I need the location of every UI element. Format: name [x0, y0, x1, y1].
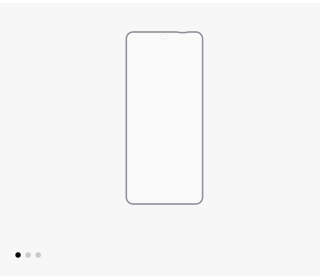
button[interactable]: Page 3	[35, 252, 41, 258]
button[interactable]: Page 1	[15, 252, 21, 258]
button[interactable]: iPhone	[126, 32, 202, 204]
button[interactable]: Page 2	[25, 252, 31, 258]
